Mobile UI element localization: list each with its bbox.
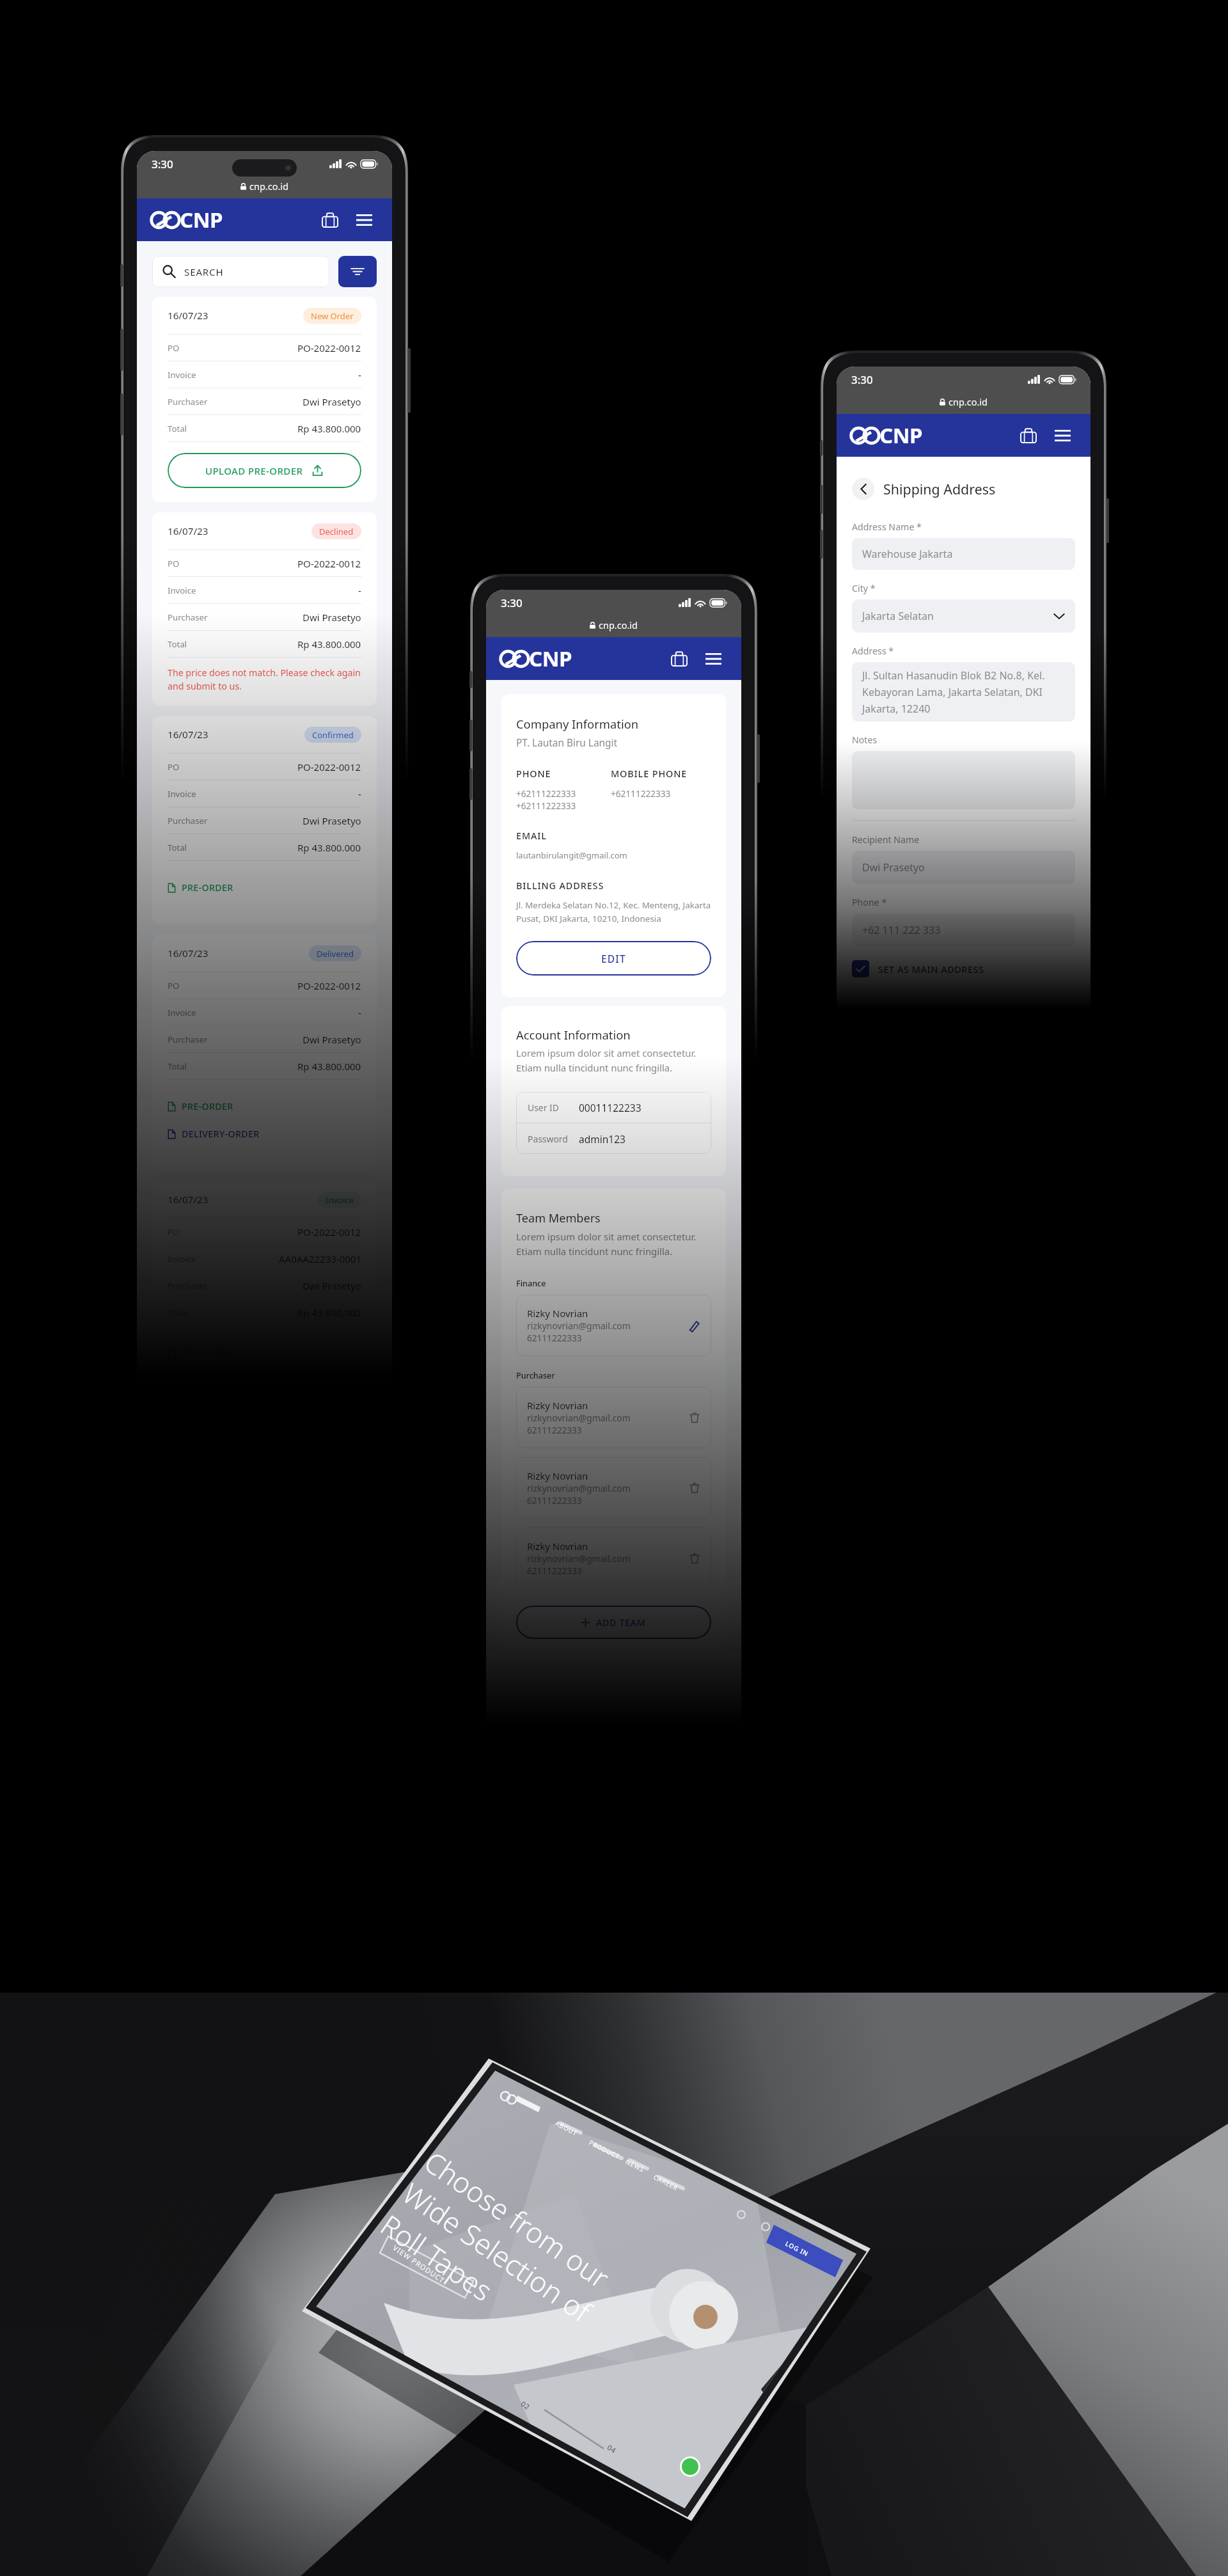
button[interactable]: Filter	[338, 256, 377, 287]
staticText: Purchaser	[168, 815, 208, 826]
staticText: -	[358, 584, 361, 597]
staticText: 3:30	[851, 372, 873, 387]
staticText: -	[358, 368, 361, 381]
staticText: NEWS	[624, 2157, 646, 2174]
button[interactable]: Rizky Novrian	[516, 1457, 711, 1519]
staticText: Rp 43.800.000	[297, 1060, 361, 1073]
staticText: Rp 43.800.000	[297, 841, 361, 854]
button[interactable]: Menu	[702, 650, 725, 668]
staticText: Shipping Address	[883, 480, 996, 498]
staticText: Purchaser	[168, 612, 208, 623]
staticText: cnp.co.id	[599, 619, 638, 631]
staticText: Jl. Merdeka Selatan No.12, Kec. Menteng,…	[516, 899, 711, 924]
staticText: Invoice	[168, 1007, 196, 1018]
button[interactable]: PRE-ORDER	[168, 1093, 233, 1120]
staticText: 04	[606, 2442, 618, 2455]
button[interactable]: 16/07/23	[152, 512, 377, 706]
staticText: PHONE	[516, 768, 551, 780]
button[interactable]: EDIT	[516, 941, 711, 976]
staticText: LOG IN	[784, 2239, 810, 2258]
button[interactable]: Menu	[353, 211, 375, 229]
button[interactable]: Warehouse Jakarta	[852, 538, 1075, 570]
button[interactable]: 16/07/23	[152, 1181, 377, 1444]
button[interactable]: Rizky Novrian	[516, 1295, 711, 1356]
staticText: Choose from our	[417, 2142, 617, 2297]
staticText: Warehouse Jakarta	[862, 547, 953, 561]
staticText: AA0AA22233-0001	[279, 1252, 361, 1265]
staticText: Address *	[852, 645, 894, 657]
button[interactable]: Jakarta Selatan	[852, 599, 1075, 633]
button[interactable]: Cart	[319, 209, 342, 231]
staticText: 16/07/23	[168, 525, 209, 538]
staticText: PT. Lautan Biru Langit	[516, 736, 618, 750]
button[interactable]: Menu	[1051, 427, 1074, 445]
staticText: admin123	[579, 1132, 626, 1146]
button[interactable]: Rizky Novrian	[516, 1387, 711, 1448]
staticText: Jl. Sultan Hasanudin Blok B2 No.8, Kel. …	[862, 668, 1065, 716]
staticText: Dwi Prasetyo	[303, 1033, 361, 1046]
other: Delete member	[689, 1553, 700, 1564]
staticText: CNP	[529, 644, 572, 673]
button[interactable]: 16/07/23	[152, 935, 377, 1171]
button[interactable]: UPLOAD PRE-ORDER	[168, 453, 361, 488]
button[interactable]: SET AS MAIN ADDRESS	[852, 960, 984, 977]
staticText: PO-2022-0012	[297, 1226, 361, 1238]
button[interactable]: DELIVERY-ORDER	[168, 1120, 260, 1148]
staticText: Rizky Novrian	[527, 1399, 588, 1412]
button[interactable]: Cart	[668, 648, 691, 670]
staticText: -	[358, 1006, 361, 1019]
staticText: Account Information	[516, 1027, 631, 1043]
staticText: Invoice	[168, 369, 196, 381]
staticText: ABOUT	[554, 2119, 579, 2138]
other: Edit member	[688, 1320, 700, 1332]
button[interactable]	[852, 751, 1075, 809]
staticText: CNP	[879, 421, 923, 450]
staticText: VIEW PRODUCT	[391, 2243, 447, 2285]
button[interactable]: ADD TEAM	[516, 1606, 711, 1639]
other: Back	[852, 478, 874, 500]
staticText: rizkynovrian@gmail.com	[527, 1482, 631, 1494]
staticText: User ID	[528, 1102, 579, 1114]
staticText: PO-2022-0012	[297, 761, 361, 773]
staticText: Jakarta Selatan	[862, 609, 934, 623]
button[interactable]: 16/07/23	[152, 297, 377, 502]
button[interactable]: Rizky Novrian	[516, 1528, 711, 1589]
staticText: The price does not match. Please check a…	[168, 667, 361, 693]
button[interactable]: SEARCH	[152, 256, 329, 287]
button[interactable]: Jl. Sultan Hasanudin Blok B2 No.8, Kel. …	[852, 662, 1075, 722]
staticText: Dwi Prasetyo	[303, 395, 361, 408]
other: Delete member	[689, 1412, 700, 1423]
staticText: Invoice	[168, 585, 196, 596]
staticText: PO	[168, 342, 180, 354]
staticText: Total	[168, 638, 187, 650]
staticText: rizkynovrian@gmail.com	[527, 1320, 631, 1332]
staticText: Dwi Prasetyo	[303, 611, 361, 624]
button[interactable]: PRE-ORDER	[168, 874, 233, 901]
staticText: UPLOAD PRE-ORDER	[205, 464, 303, 477]
staticText: Invoice	[168, 1253, 196, 1265]
staticText: Purchaser	[168, 1034, 208, 1045]
button[interactable]: Dwi Prasetyo	[852, 851, 1075, 884]
staticText: Address Name *	[852, 521, 922, 533]
button[interactable]: +62 111 222 333	[852, 913, 1075, 946]
staticText: 16/07/23	[168, 728, 209, 741]
staticText: PO-2022-0012	[297, 342, 361, 354]
button[interactable]: Back	[852, 478, 996, 500]
staticText: Roll Tapes	[374, 2206, 500, 2309]
staticText: Purchaser	[168, 1280, 208, 1292]
button[interactable]: 16/07/23	[152, 716, 377, 924]
staticText: Phone *	[852, 896, 887, 908]
button[interactable]: Cart	[1017, 425, 1040, 446]
staticText: Total	[168, 1061, 187, 1072]
staticText: -	[358, 787, 361, 800]
